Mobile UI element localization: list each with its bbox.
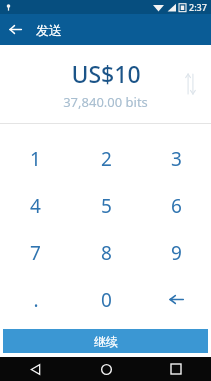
staticText: 发送 (36, 22, 62, 38)
button[interactable]: Back (0, 357, 71, 381)
button[interactable]: Backspace (141, 276, 211, 323)
button[interactable]: 3 (141, 136, 211, 182)
staticText: 7 (30, 240, 41, 266)
staticText: 37,840.00 bits (63, 93, 148, 111)
button[interactable]: 9 (141, 229, 211, 276)
button[interactable]: Swap currency (177, 71, 203, 97)
staticText: 4 (30, 193, 41, 219)
button[interactable]: 0 (71, 276, 141, 323)
button[interactable]: 1 (0, 136, 71, 182)
staticText: 2 (101, 146, 112, 172)
staticText: 1 (30, 146, 41, 172)
staticText: 6 (171, 193, 182, 219)
button[interactable]: Back (0, 14, 31, 45)
staticText: 8 (101, 240, 112, 266)
button[interactable]: Recent apps (141, 357, 211, 381)
staticText: 3 (171, 146, 182, 172)
staticText: US$10 (71, 58, 141, 89)
button[interactable]: 2 (71, 136, 141, 182)
staticText: . (33, 287, 39, 313)
button[interactable]: 6 (141, 182, 211, 229)
staticText: 2:37 (189, 1, 207, 13)
button[interactable]: 继续 (3, 329, 208, 353)
staticText: 5 (101, 193, 112, 219)
button[interactable]: 8 (71, 229, 141, 276)
staticText: 9 (171, 240, 182, 266)
staticText: 0 (101, 287, 112, 313)
button[interactable]: 5 (71, 182, 141, 229)
button[interactable]: 7 (0, 229, 71, 276)
staticText: 继续 (94, 334, 118, 349)
button[interactable]: 4 (0, 182, 71, 229)
button[interactable]: . (0, 276, 71, 323)
button[interactable]: Home (71, 357, 141, 381)
